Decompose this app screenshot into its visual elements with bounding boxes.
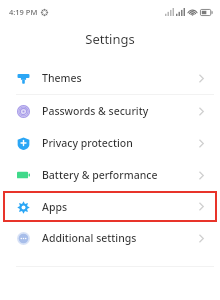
button[interactable]: Themes — [0, 62, 220, 94]
button[interactable]: Privacy protection — [0, 127, 220, 159]
button[interactable]: Battery & performance — [0, 159, 220, 191]
staticText: Settings — [85, 30, 135, 48]
staticText: Privacy protection — [42, 136, 133, 150]
staticText: Passwords & security — [42, 104, 149, 118]
staticText: Battery & performance — [42, 168, 158, 182]
staticText: Themes — [42, 71, 82, 85]
staticText: 4:19 PM — [9, 7, 38, 17]
button[interactable]: Passwords & security — [0, 95, 220, 127]
button[interactable]: Additional settings — [0, 222, 220, 254]
staticText: Apps — [42, 200, 68, 214]
staticText: Additional settings — [42, 231, 137, 245]
